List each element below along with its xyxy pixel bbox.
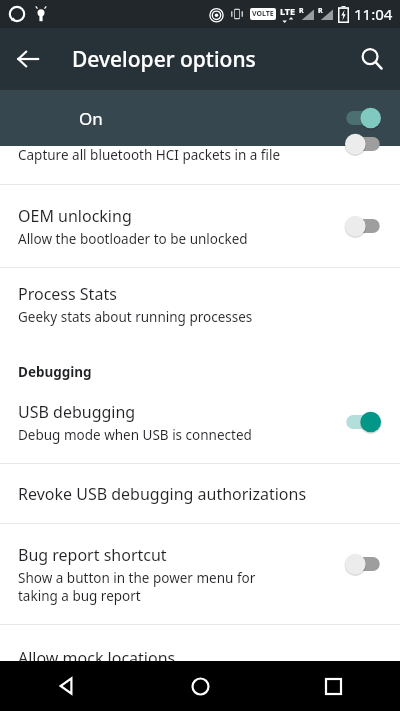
staticText: taking a bug report (18, 587, 141, 605)
staticText: USB debugging (18, 401, 136, 423)
staticText: Show a button in the power menu for (18, 569, 256, 587)
staticText: R (318, 6, 323, 16)
button[interactable]: Revoke USB debugging authorizations (0, 464, 400, 523)
staticText: 11:04 (354, 4, 393, 24)
button[interactable]: USB debugging (0, 381, 400, 463)
staticText: R (299, 6, 304, 16)
button[interactable]: Allow mock locations (0, 625, 400, 661)
button[interactable]: Back (0, 661, 134, 711)
staticText: Process Stats (18, 283, 117, 305)
staticText: Debugging (18, 363, 92, 381)
button[interactable]: Process Stats (0, 268, 400, 340)
staticText: Developer options (72, 45, 256, 74)
staticText: Allow the bootloader to be unlocked (18, 230, 248, 248)
button[interactable]: OEM unlocking (0, 185, 400, 267)
button[interactable]: Capture all bluetooth HCI packets in a f… (0, 146, 400, 184)
button[interactable]: Bug report shortcut (0, 524, 400, 624)
staticText: VOLTE (252, 9, 274, 19)
button[interactable]: Recent apps (267, 661, 400, 711)
staticText: Geeky stats about running processes (18, 308, 253, 326)
button[interactable]: Home (134, 661, 267, 711)
staticText: Revoke USB debugging authorizations (18, 483, 307, 505)
staticText: Bug report shortcut (18, 544, 167, 566)
staticText: Allow mock locations (18, 647, 176, 661)
staticText: Capture all bluetooth HCI packets in a f… (18, 146, 281, 164)
staticText: On (79, 107, 103, 130)
staticText: LTE (280, 5, 296, 17)
button[interactable]: On (0, 90, 400, 146)
button[interactable]: Back (0, 31, 56, 87)
staticText: Debug mode when USB is connected (18, 426, 252, 444)
button[interactable]: Search (344, 31, 400, 87)
staticText: OEM unlocking (18, 205, 132, 227)
